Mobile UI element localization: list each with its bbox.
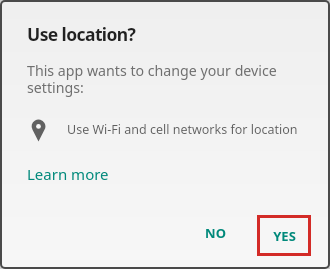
staticText: NO [205,224,226,242]
staticText: This app wants to change your device set… [27,61,277,98]
button[interactable]: Learn more [23,160,113,188]
staticText: Use location? [27,22,136,46]
staticText: YES [273,227,296,245]
button[interactable]: NO [193,216,237,250]
staticText: Learn more [27,164,109,184]
staticText: Use Wi-Fi and cell networks for location [67,121,298,138]
button[interactable]: YES [257,215,311,256]
